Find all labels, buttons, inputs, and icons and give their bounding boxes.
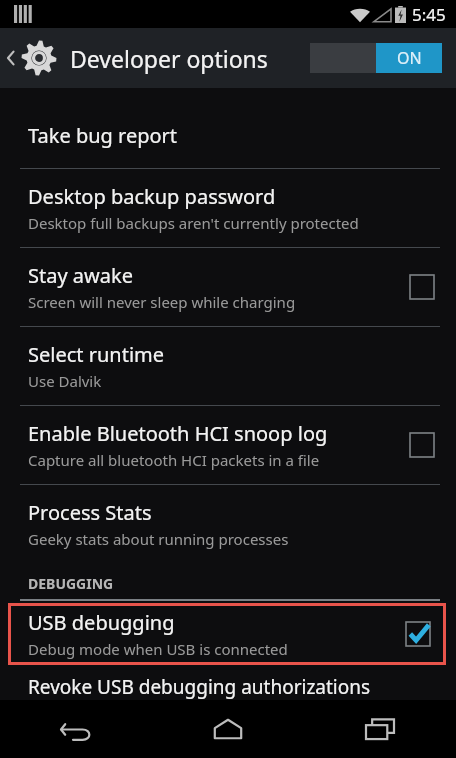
staticText: USB debugging — [28, 609, 175, 636]
staticText: 5:45 — [412, 3, 446, 26]
button[interactable]: Process Stats — [0, 485, 456, 563]
staticText: Select runtime — [28, 341, 165, 368]
staticText: Desktop backup password — [28, 183, 276, 210]
staticText: Take bug report — [28, 122, 178, 149]
staticText: Screen will never sleep while charging — [28, 292, 296, 312]
button[interactable]: Back to Settings — [0, 28, 278, 88]
button[interactable]: Back — [36, 700, 116, 758]
button[interactable]: Take bug report — [0, 102, 456, 168]
staticText: ON — [397, 47, 422, 69]
button[interactable]: Recent apps — [340, 700, 420, 758]
staticText: Revoke USB debugging authorizations — [28, 674, 371, 700]
staticText: Geeky stats about running processes — [28, 529, 289, 549]
button[interactable]: Enable Bluetooth HCI snoop log — [0, 406, 456, 484]
staticText: Stay awake — [28, 262, 133, 289]
staticText: Desktop full backups aren't currently pr… — [28, 213, 359, 233]
button[interactable]: USB debugging — [8, 603, 446, 665]
staticText: Process Stats — [28, 499, 152, 526]
staticText: DEBUGGING — [28, 574, 114, 593]
button[interactable]: Stay awake — [0, 248, 456, 326]
staticText: Enable Bluetooth HCI snoop log — [28, 420, 328, 447]
button[interactable]: Revoke USB debugging authorizations — [0, 665, 456, 700]
button[interactable]: Developer options on — [310, 43, 442, 73]
staticText: Capture all bluetooth HCI packets in a f… — [28, 450, 320, 470]
button[interactable]: Select runtime — [0, 327, 456, 405]
staticText: Use Dalvik — [28, 371, 102, 391]
button[interactable]: Home — [188, 700, 268, 758]
staticText: Developer options — [70, 43, 268, 74]
button[interactable]: Desktop backup password — [0, 169, 456, 247]
staticText: Debug mode when USB is connected — [28, 639, 288, 659]
